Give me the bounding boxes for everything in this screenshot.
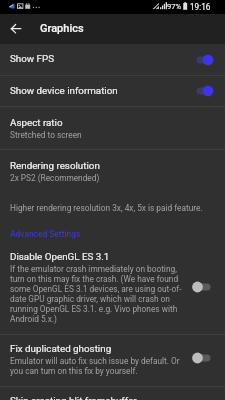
staticText: Skip creating blit framebuffer xyxy=(10,395,137,400)
staticText: Show device information xyxy=(10,85,118,96)
button[interactable]: Fix duplicated ghosting xyxy=(0,335,225,386)
staticText: Graphics xyxy=(40,22,84,35)
staticText: 97% xyxy=(167,2,182,11)
button[interactable]: Advanced Settings xyxy=(0,223,225,250)
button[interactable]: Show device information xyxy=(0,76,225,106)
staticText: Aspect ratio xyxy=(10,117,63,128)
staticText: Rendering resolution xyxy=(10,160,100,171)
staticText: Higher rendering resolution 3x, 4x, 5x i… xyxy=(10,203,203,213)
button[interactable]: Disable OpenGL ES 3.1 xyxy=(0,250,225,334)
button[interactable]: Aspect ratio xyxy=(0,107,225,149)
button[interactable]: Back xyxy=(0,14,32,44)
staticText: 19:16 xyxy=(190,2,211,12)
staticText: Show FPS xyxy=(10,53,55,64)
staticText: If the emulator crash immediately on boo… xyxy=(10,264,184,324)
staticText: Emulator will auto fix such issue by def… xyxy=(10,356,184,376)
staticText: Stretched to screen xyxy=(10,130,82,140)
staticText: Advanced Settings xyxy=(10,229,81,239)
button[interactable]: Skip creating blit framebuffer xyxy=(0,387,225,399)
staticText: 2x PS2 (Recommended) xyxy=(10,173,100,183)
button[interactable]: Rendering resolution xyxy=(0,150,225,195)
staticText: Fix duplicated ghosting xyxy=(10,343,112,354)
staticText: Disable OpenGL ES 3.1 xyxy=(10,251,110,262)
button[interactable]: Show FPS xyxy=(0,44,225,75)
